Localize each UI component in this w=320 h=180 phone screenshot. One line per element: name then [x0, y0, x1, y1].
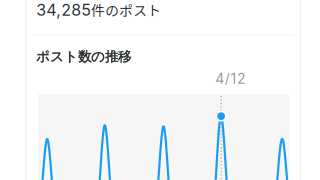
staticText: 34,285 — [36, 0, 91, 20]
staticText: 4/12 — [215, 70, 246, 87]
button[interactable]: 34,285 — [26, 0, 299, 26]
button[interactable]: ポスト数の推移 — [26, 50, 299, 180]
staticText: 件のポスト — [91, 0, 161, 20]
staticText: ポスト数の推移 — [36, 48, 131, 65]
